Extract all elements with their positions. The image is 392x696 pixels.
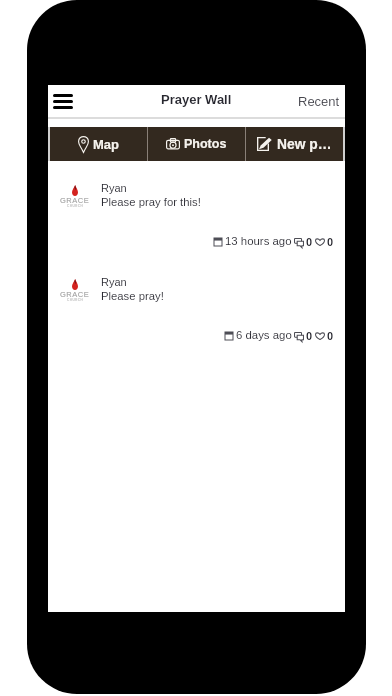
staticText: 0	[327, 330, 334, 342]
button[interactable]: Recent	[298, 94, 345, 109]
staticText: 0	[327, 236, 334, 248]
button[interactable]: New p…	[246, 127, 343, 161]
staticText: 0	[306, 330, 313, 342]
button[interactable]: GRACE	[48, 275, 345, 342]
staticText: Ryan	[101, 182, 127, 194]
staticText: Prayer Wall	[161, 92, 232, 107]
staticText: Photos	[184, 137, 227, 151]
staticText: Please pray!	[101, 290, 164, 303]
staticText: Map	[93, 137, 119, 152]
button[interactable]: GRACE	[48, 181, 345, 248]
staticText: Ryan	[101, 276, 127, 288]
staticText: 0	[306, 236, 313, 248]
staticText: 6 days ago	[236, 329, 292, 342]
staticText: CHURCH	[67, 298, 84, 302]
staticText: 13 hours ago	[225, 235, 292, 248]
staticText: Recent	[298, 94, 340, 109]
button[interactable]: Photos	[148, 127, 245, 161]
button[interactable]: Menu	[48, 86, 78, 116]
staticText: GRACE	[60, 290, 90, 298]
button[interactable]: Map	[50, 127, 147, 161]
staticText: GRACE	[60, 196, 90, 204]
staticText: CHURCH	[67, 204, 84, 208]
staticText: Please pray for this!	[101, 196, 201, 209]
staticText: New p…	[277, 137, 332, 152]
